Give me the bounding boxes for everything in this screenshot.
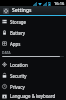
button[interactable]: Privacy [0,81,66,92]
staticText: 16:16 [54,1,65,6]
button[interactable]: Language & keyboard [0,92,66,100]
staticText: Settings [12,7,32,14]
staticText: Security [10,73,27,79]
button[interactable]: Battery [0,27,66,38]
button[interactable]: Storage [0,16,66,27]
staticText: Battery [10,30,26,36]
button[interactable]: Location [0,59,66,70]
staticText: Apps [10,41,21,47]
staticText: DATA [2,50,11,55]
button[interactable]: Apps [0,38,66,49]
staticText: Storage [10,19,27,25]
button[interactable]: Security [0,70,66,81]
staticText: Privacy [10,84,25,90]
button[interactable]: Settings [0,6,66,15]
staticText: Language & keyboard [10,93,56,99]
staticText: Location [10,62,28,68]
